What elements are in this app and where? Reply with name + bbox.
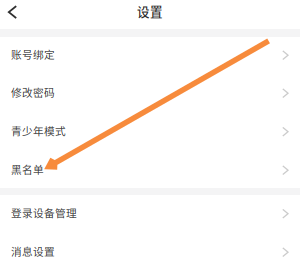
button[interactable]: 登录设备管理 (0, 195, 300, 233)
button[interactable]: 修改密码 (0, 75, 300, 114)
staticText: 登录设备管理 (11, 205, 77, 220)
button[interactable]: Back (0, 0, 26, 22)
button[interactable]: 黑名单 (0, 152, 300, 188)
button[interactable]: 账号绑定 (0, 37, 300, 75)
button[interactable]: 消息设置 (0, 233, 300, 268)
staticText: 修改密码 (11, 84, 55, 100)
button[interactable]: 青少年模式 (0, 114, 300, 152)
staticText: 青少年模式 (11, 123, 66, 138)
staticText: 设置 (137, 2, 163, 20)
staticText: 消息设置 (11, 243, 55, 259)
staticText: 黑名单 (11, 161, 44, 177)
staticText: 账号绑定 (11, 46, 55, 62)
